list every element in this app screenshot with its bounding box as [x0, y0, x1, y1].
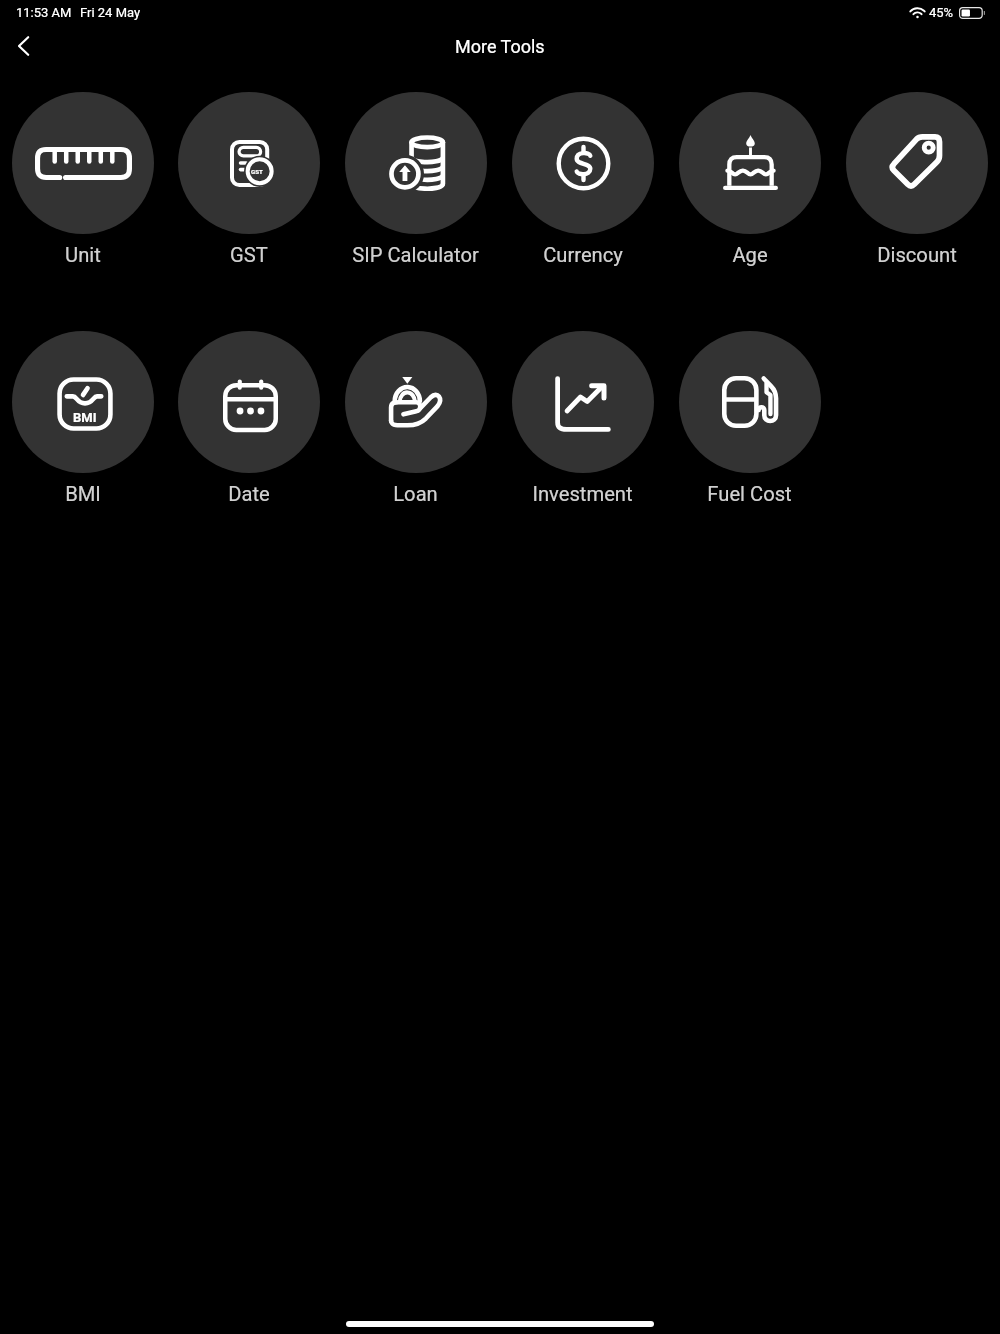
button[interactable]: Back — [6, 28, 44, 64]
button[interactable]: Currency — [499, 92, 666, 267]
staticText: Fuel Cost — [707, 482, 792, 506]
staticText: More Tools — [455, 36, 545, 57]
button[interactable]: GST — [166, 92, 332, 267]
button[interactable]: BMI — [0, 331, 166, 506]
button[interactable]: Fuel Cost — [666, 331, 833, 506]
staticText: Unit — [65, 243, 101, 267]
button[interactable]: Age — [666, 92, 833, 267]
button[interactable]: Unit — [0, 92, 166, 267]
staticText: Loan — [393, 482, 438, 506]
staticText: Date — [228, 482, 270, 506]
staticText: Age — [732, 243, 768, 267]
staticText: BMI — [65, 482, 101, 506]
button[interactable]: Discount — [833, 92, 1000, 267]
staticText: Fri 24 May — [80, 5, 141, 20]
button[interactable]: Date — [166, 331, 332, 506]
staticText: GST — [251, 168, 263, 175]
button[interactable]: SIP Calculator — [332, 92, 499, 267]
staticText: Investment — [532, 482, 633, 506]
staticText: 11:53 AM — [16, 5, 72, 20]
staticText: SIP Calculator — [352, 243, 479, 267]
staticText: 45% — [929, 5, 954, 20]
staticText: BMI — [73, 410, 97, 424]
staticText: Discount — [877, 243, 957, 267]
staticText: GST — [230, 243, 268, 267]
staticText: Currency — [543, 243, 623, 267]
button[interactable]: Investment — [499, 331, 666, 506]
button[interactable]: Loan — [332, 331, 499, 506]
